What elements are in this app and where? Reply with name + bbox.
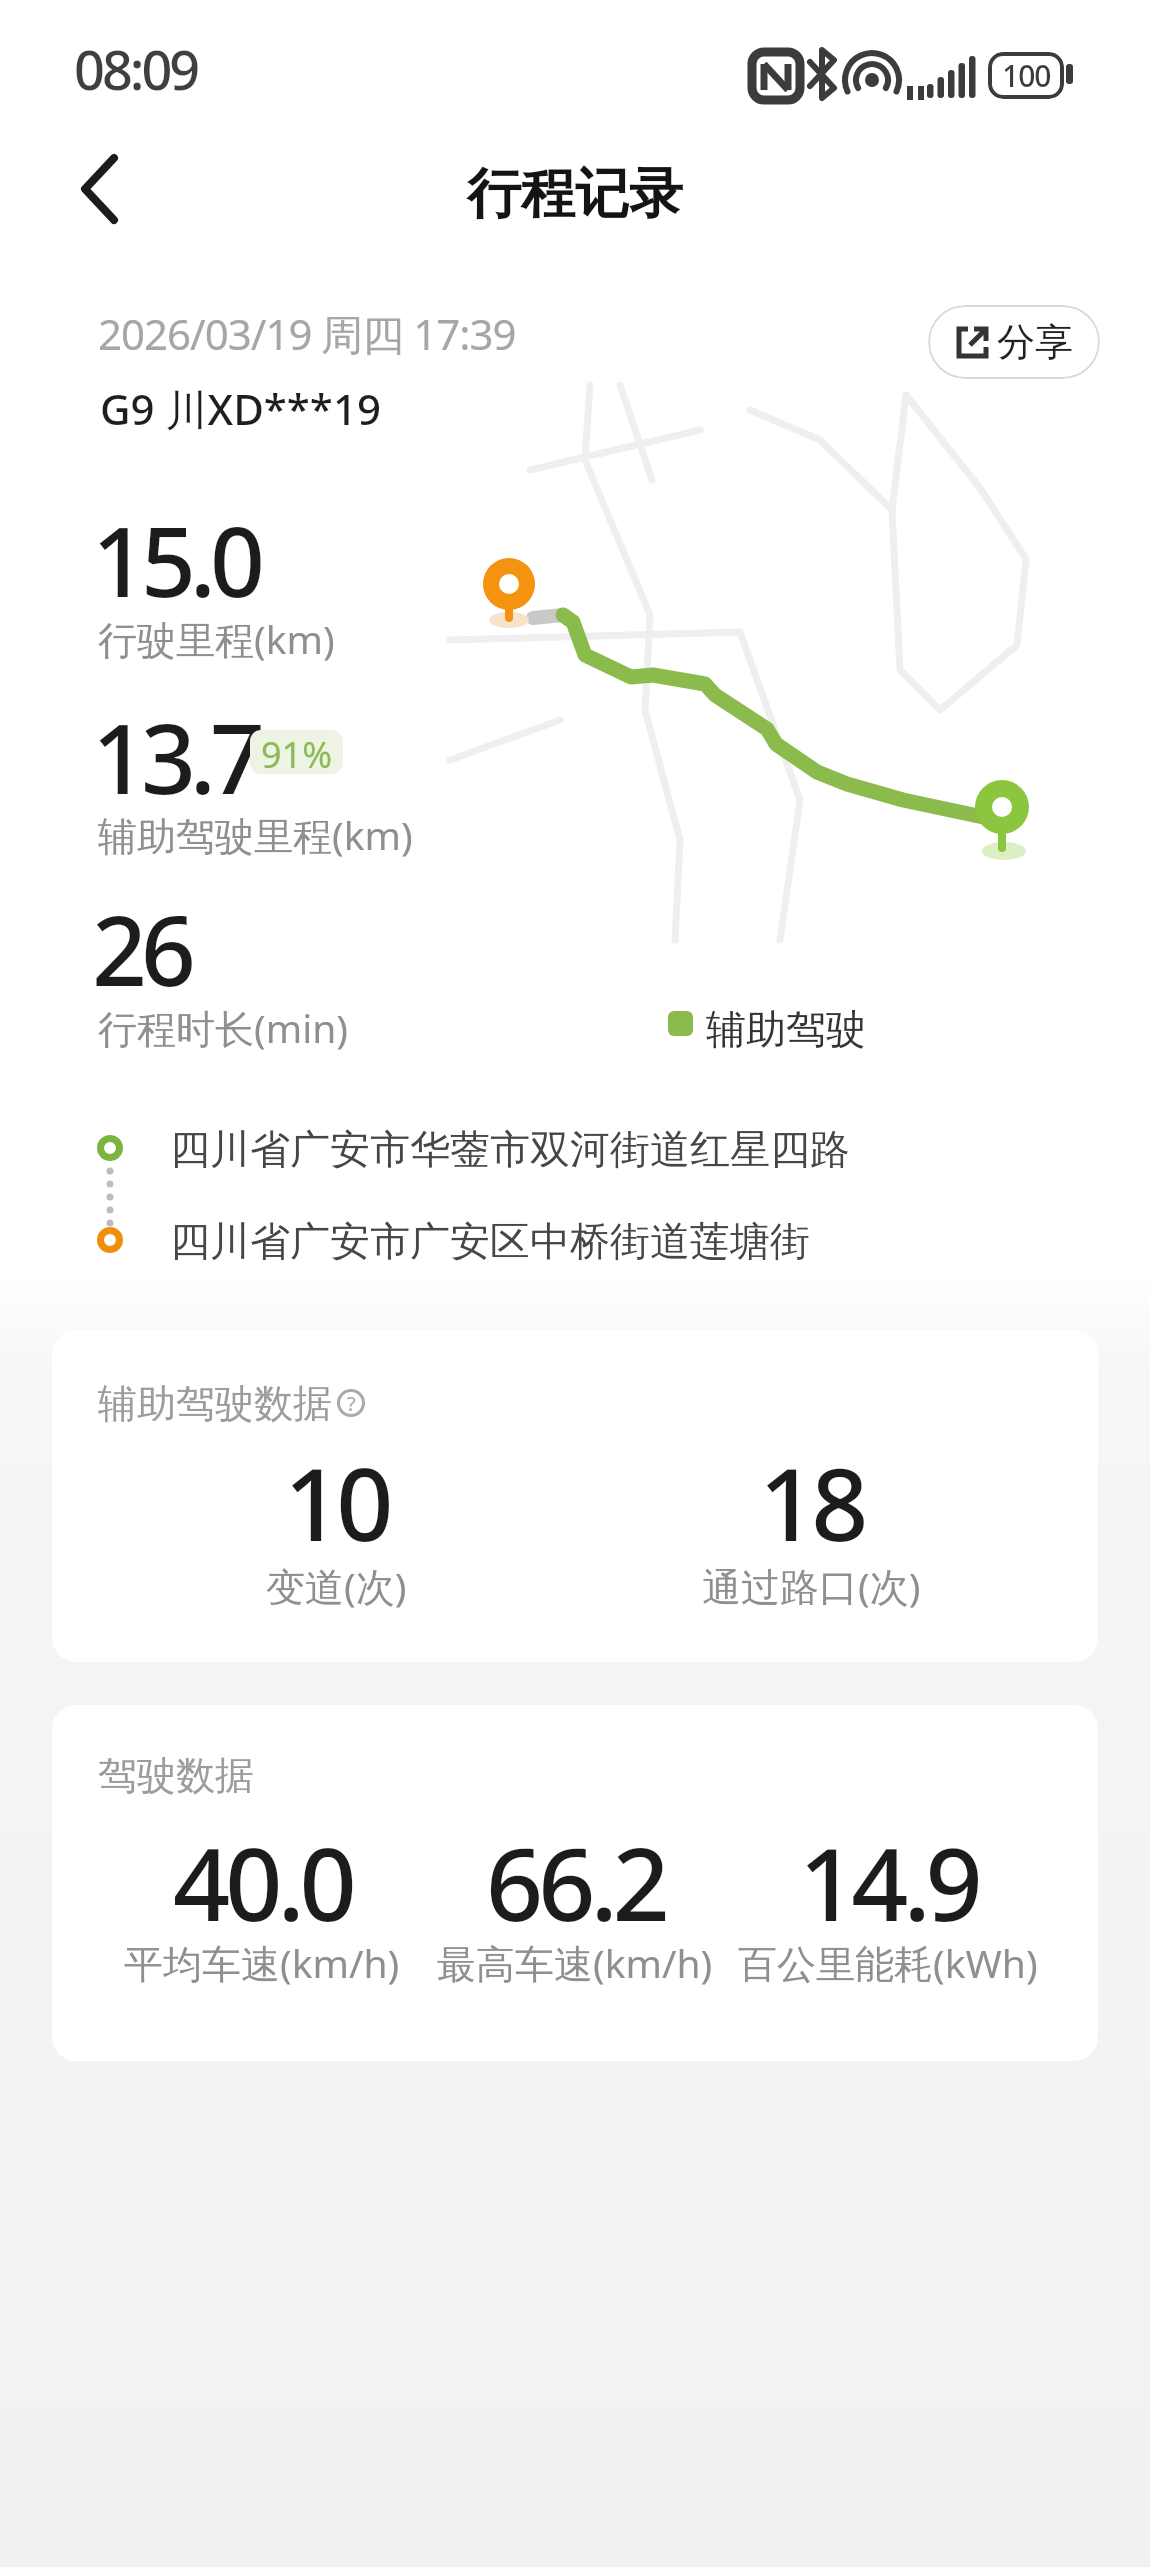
staticText: G9 川XD***19 [100, 380, 381, 437]
staticText: 40.0 [173, 1814, 352, 1950]
staticText: 91% [261, 730, 333, 774]
staticText: 行程记录 [467, 160, 683, 228]
staticText: 辅助驾驶数据 [98, 1379, 332, 1428]
staticText: 100 [1002, 55, 1051, 96]
staticText: ? [347, 1390, 356, 1417]
staticText: 最高车速(km/h) [437, 1936, 713, 1989]
staticText: 驾驶数据 [98, 1751, 254, 1800]
staticText: 10 [284, 1434, 389, 1570]
staticText: 15.0 [92, 494, 259, 625]
staticText: 18 [759, 1434, 864, 1570]
staticText: 四川省广安市华蓥市双河街道红星四路 [170, 1124, 850, 1174]
staticText: 13.7 [92, 691, 259, 822]
button[interactable]: 分享 [928, 305, 1100, 379]
staticText: 平均车速(km/h) [124, 1936, 400, 1989]
staticText: 26 [92, 883, 190, 1014]
staticText: 通过路口(次) [702, 1559, 921, 1612]
staticText: 辅助驾驶里程(km) [98, 808, 413, 861]
staticText: 行驶里程(km) [98, 612, 335, 665]
staticText: 分享 [997, 318, 1073, 366]
staticText: 66.2 [486, 1814, 665, 1950]
button[interactable]: ? [337, 1389, 365, 1417]
staticText: 行程时长(min) [98, 1001, 349, 1054]
staticText: 百公里能耗(kWh) [738, 1936, 1038, 1989]
staticText: 2026/03/19 周四 17:39 [98, 305, 516, 362]
staticText: 14.9 [799, 1814, 978, 1950]
staticText: 变道(次) [266, 1559, 407, 1612]
button[interactable] [68, 150, 142, 224]
staticText: 08:09 [74, 32, 198, 106]
staticText: 四川省广安市广安区中桥街道莲塘街 [170, 1216, 810, 1266]
staticText: 辅助驾驶 [706, 1004, 866, 1054]
